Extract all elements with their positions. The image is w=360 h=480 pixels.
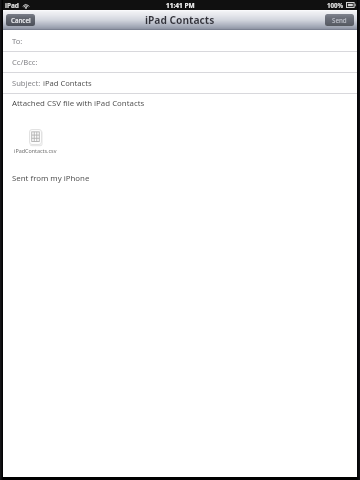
button[interactable]: Cc/Bcc:: [3, 52, 357, 73]
staticText: Attached CSV file with iPad Contacts: [12, 98, 145, 109]
staticText: iPad Contacts: [43, 78, 92, 88]
staticText: 100%: [327, 1, 344, 9]
staticText: iPadContacts.csv: [14, 147, 57, 154]
staticText: To:: [12, 36, 23, 46]
button[interactable]: Send: [325, 14, 354, 26]
staticText: iPad: [5, 1, 19, 10]
staticText: Subject:: [12, 78, 43, 88]
button[interactable]: Cancel: [6, 14, 35, 26]
staticText: Sent from my iPhone: [12, 173, 90, 184]
staticText: Send: [332, 16, 347, 24]
staticText: iPad Contacts: [145, 13, 215, 27]
button[interactable]: To:: [3, 31, 357, 52]
staticText: Cc/Bcc:: [12, 57, 38, 67]
staticText: Cancel: [11, 16, 31, 24]
staticText: 11:41 PM: [166, 1, 195, 10]
button[interactable]: iPadContacts.csv attachment: [14, 129, 57, 154]
button[interactable]: Subject:: [3, 73, 357, 94]
